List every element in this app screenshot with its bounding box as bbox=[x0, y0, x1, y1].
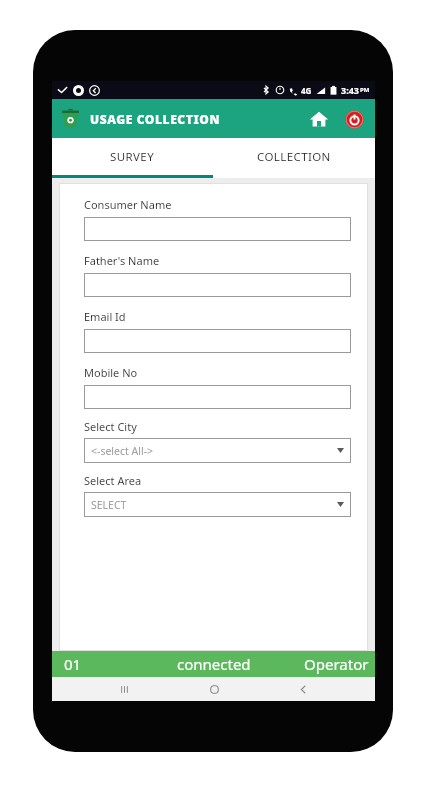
staticText: Father's Name bbox=[84, 253, 160, 268]
staticText: Email Id bbox=[84, 309, 126, 324]
staticText: 01 bbox=[64, 654, 82, 674]
staticText: SELECT bbox=[91, 498, 127, 512]
button[interactable]: Home bbox=[197, 677, 231, 701]
staticText: 3:43 bbox=[341, 84, 359, 96]
staticText: Mobile No bbox=[84, 365, 138, 380]
button[interactable]: Recent apps bbox=[107, 677, 141, 701]
button[interactable] bbox=[84, 385, 351, 409]
staticText: USAGE COLLECTION bbox=[90, 111, 221, 127]
button[interactable] bbox=[84, 217, 351, 241]
staticText: connected bbox=[177, 654, 251, 674]
staticText: PM bbox=[360, 86, 370, 94]
button[interactable] bbox=[84, 273, 351, 297]
button[interactable]: Power off bbox=[341, 106, 367, 132]
staticText: <-select All-> bbox=[91, 444, 154, 458]
button[interactable]: <-select All-> bbox=[84, 438, 351, 463]
button[interactable]: Back bbox=[286, 677, 320, 701]
staticText: Operator bbox=[304, 654, 369, 674]
button[interactable] bbox=[84, 329, 351, 353]
button[interactable]: COLLECTION bbox=[213, 138, 375, 175]
staticText: Select City bbox=[84, 419, 137, 434]
button[interactable]: SURVEY bbox=[52, 138, 213, 175]
staticText: 4G bbox=[301, 85, 312, 96]
staticText: Select Area bbox=[84, 473, 142, 488]
staticText: Consumer Name bbox=[84, 197, 172, 212]
button[interactable]: SELECT bbox=[84, 492, 351, 517]
staticText: COLLECTION bbox=[257, 149, 331, 165]
button[interactable]: Home bbox=[305, 105, 333, 133]
staticText: SURVEY bbox=[110, 149, 155, 165]
